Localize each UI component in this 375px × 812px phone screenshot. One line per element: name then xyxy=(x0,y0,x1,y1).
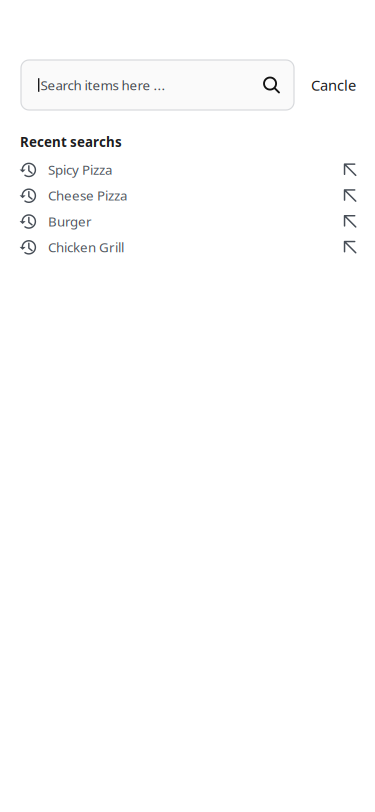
staticText: Cheese Pizza xyxy=(48,187,127,204)
button[interactable]: Cheese Pizza xyxy=(0,182,375,208)
button[interactable]: Spicy Pizza xyxy=(0,157,375,182)
button[interactable]: Cancle xyxy=(294,60,373,110)
staticText: Chicken Grill xyxy=(48,238,124,256)
staticText: Spicy Pizza xyxy=(48,161,112,178)
staticText: Search items here ... xyxy=(40,76,165,94)
staticText: Recent searchs xyxy=(20,133,122,151)
button[interactable]: Chicken Grill xyxy=(0,234,375,260)
staticText: Cancle xyxy=(311,75,356,95)
staticText: Burger xyxy=(48,212,92,230)
button[interactable]: Search items here ... xyxy=(21,60,294,110)
button[interactable]: Burger xyxy=(0,208,375,234)
